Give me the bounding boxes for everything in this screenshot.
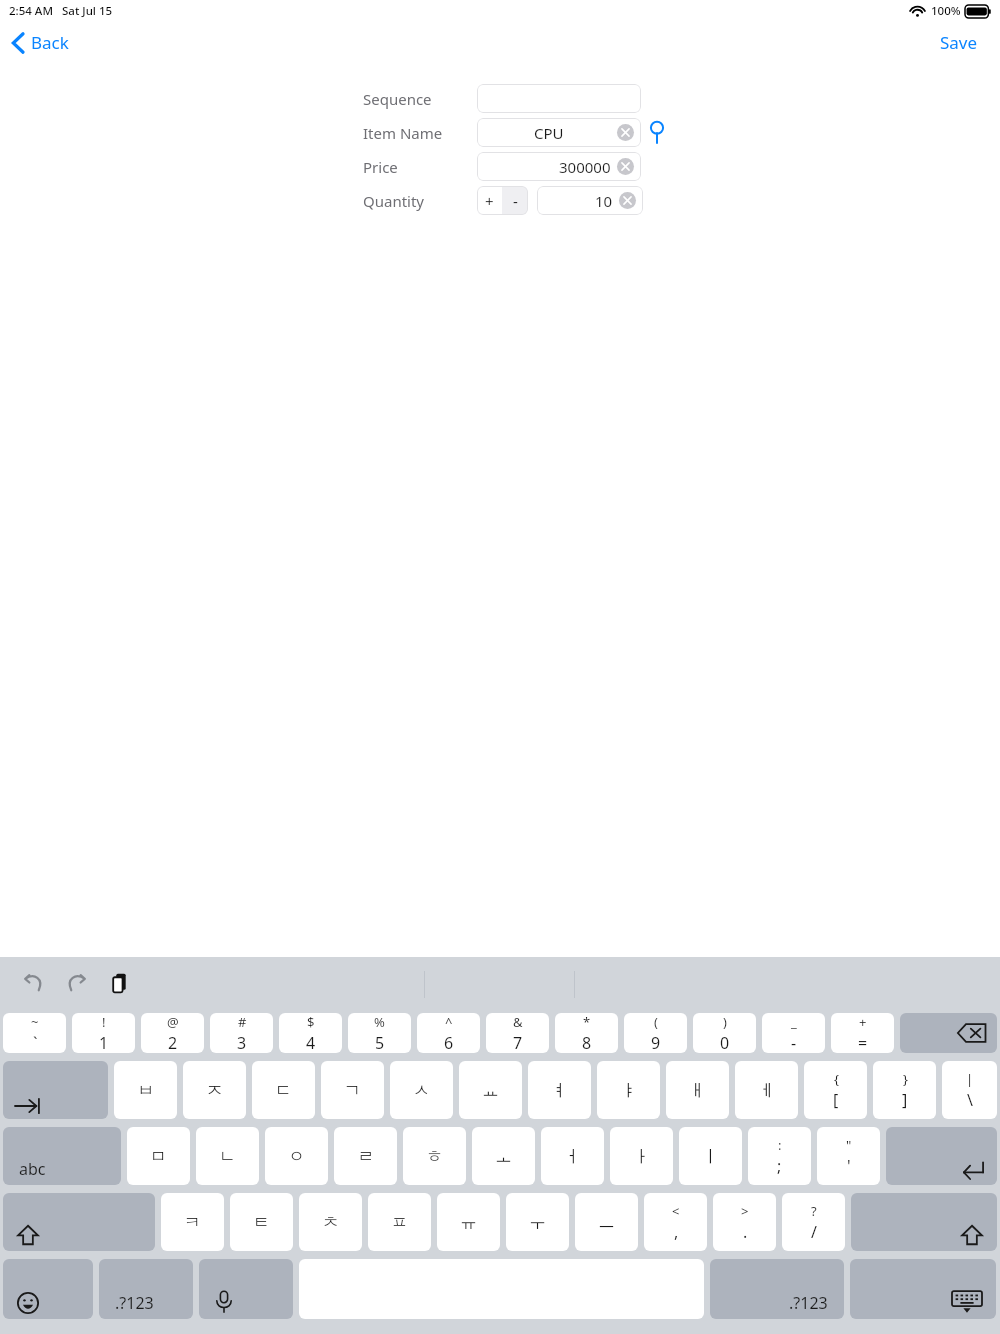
button[interactable]: ( [624, 1013, 687, 1053]
staticText: ㅌ [253, 1212, 270, 1233]
button[interactable]: ) [693, 1013, 756, 1053]
staticText: ) [723, 1013, 727, 1031]
button[interactable]: ~ [3, 1013, 66, 1053]
staticText: ㅗ [495, 1146, 512, 1167]
button[interactable]: # [210, 1013, 273, 1053]
button[interactable] [900, 1013, 997, 1053]
button[interactable]: ㅑ [597, 1061, 660, 1119]
button[interactable]: ㅊ [299, 1193, 362, 1251]
button[interactable]: & [486, 1013, 549, 1053]
staticText: ㅊ [322, 1212, 339, 1233]
staticText: ㅁ [150, 1146, 167, 1167]
button[interactable]: Clear [617, 158, 634, 175]
button[interactable]: ㄴ [196, 1127, 259, 1185]
button[interactable] [3, 1193, 155, 1251]
staticText: Save [940, 31, 978, 54]
staticText: 4 [306, 1032, 316, 1053]
button[interactable]: ㅠ [437, 1193, 500, 1251]
button[interactable] [851, 1193, 997, 1251]
button[interactable]: ㄱ [321, 1061, 384, 1119]
button[interactable]: _ [762, 1013, 825, 1053]
button[interactable] [199, 1259, 293, 1319]
button[interactable] [3, 1259, 93, 1319]
button[interactable]: Save [934, 27, 984, 58]
button[interactable]: ㅅ [390, 1061, 453, 1119]
button[interactable]: : [748, 1127, 811, 1185]
button[interactable]: + [831, 1013, 894, 1053]
button[interactable]: ㅇ [265, 1127, 328, 1185]
button[interactable]: ㅂ [114, 1061, 177, 1119]
staticText: - [513, 191, 518, 211]
staticText: CPU [534, 123, 564, 143]
button[interactable]: Undo [20, 970, 46, 996]
button[interactable]: 10 [537, 186, 643, 215]
button[interactable]: ㅎ [403, 1127, 466, 1185]
button[interactable]: .?123 [99, 1259, 193, 1319]
staticText: 6 [444, 1032, 454, 1053]
button[interactable]: $ [279, 1013, 342, 1053]
staticText: ' [847, 1155, 851, 1177]
button[interactable]: Pick item [649, 121, 665, 145]
button[interactable]: ^ [417, 1013, 480, 1053]
staticText: .?123 [789, 1292, 828, 1314]
button[interactable]: ㄹ [334, 1127, 397, 1185]
button[interactable]: ㅐ [666, 1061, 729, 1119]
button[interactable]: " [817, 1127, 880, 1185]
staticText: ㅇ [288, 1146, 305, 1167]
button[interactable]: ㅕ [528, 1061, 591, 1119]
button[interactable]: Decrease [502, 186, 528, 215]
button[interactable]: * [555, 1013, 618, 1053]
button[interactable]: ㅓ [541, 1127, 604, 1185]
button[interactable]: .?123 [710, 1259, 844, 1319]
button[interactable] [477, 84, 641, 113]
button[interactable]: | [942, 1061, 997, 1119]
button[interactable]: abc [3, 1127, 121, 1185]
button[interactable]: ㅜ [506, 1193, 569, 1251]
staticText: : [778, 1136, 782, 1154]
button[interactable] [3, 1061, 108, 1119]
button[interactable]: ㅈ [183, 1061, 246, 1119]
button[interactable]: 300000 [477, 152, 641, 181]
button[interactable]: ! [72, 1013, 135, 1053]
button[interactable]: ? [782, 1193, 845, 1251]
staticText: " [846, 1136, 852, 1154]
button[interactable]: < [644, 1193, 707, 1251]
button[interactable]: ㅗ [472, 1127, 535, 1185]
button[interactable]: > [713, 1193, 776, 1251]
staticText: ㅑ [620, 1080, 637, 1101]
staticText: 2:54 AM [9, 3, 53, 19]
staticText: * [583, 1013, 591, 1031]
button[interactable]: @ [141, 1013, 204, 1053]
button[interactable]: ㅋ [161, 1193, 224, 1251]
button[interactable]: % [348, 1013, 411, 1053]
button[interactable]: { [804, 1061, 867, 1119]
button[interactable]: CPU [477, 118, 641, 147]
button[interactable]: ㅌ [230, 1193, 293, 1251]
button[interactable]: Clear [617, 124, 634, 141]
button[interactable]: ㅏ [610, 1127, 673, 1185]
staticText: & [513, 1013, 523, 1031]
button[interactable]: ㅡ [575, 1193, 638, 1251]
button[interactable]: Paste [108, 970, 134, 996]
staticText: 2 [168, 1032, 178, 1053]
button[interactable] [850, 1259, 996, 1319]
button[interactable]: ㅍ [368, 1193, 431, 1251]
button[interactable]: Increase [477, 186, 502, 215]
staticText: \ [967, 1089, 973, 1111]
button[interactable]: ㄷ [252, 1061, 315, 1119]
staticText: 100% [931, 3, 961, 19]
button[interactable]: ㅛ [459, 1061, 522, 1119]
button[interactable] [886, 1127, 997, 1185]
staticText: ㅠ [460, 1212, 477, 1233]
button[interactable]: ㅔ [735, 1061, 798, 1119]
staticText: ㅓ [564, 1146, 581, 1167]
button[interactable]: ㅁ [127, 1127, 190, 1185]
staticText: @ [167, 1013, 179, 1031]
button[interactable]: Back [8, 27, 73, 58]
staticText: ㄴ [219, 1146, 236, 1167]
button[interactable]: ㅣ [679, 1127, 742, 1185]
button[interactable]: Redo [64, 970, 90, 996]
button[interactable]: Clear [619, 192, 636, 209]
button[interactable]: } [873, 1061, 936, 1119]
